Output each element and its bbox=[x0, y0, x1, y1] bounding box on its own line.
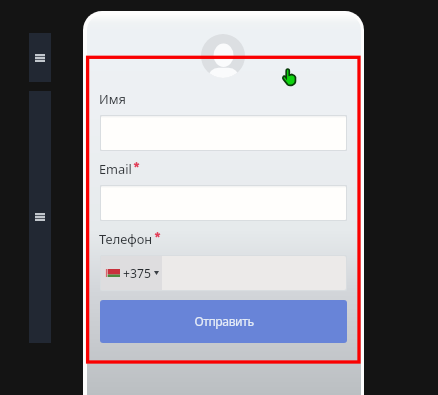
button[interactable]: Side panel menu bbox=[29, 91, 51, 343]
staticText: Имя bbox=[99, 90, 126, 107]
button[interactable]: Отправить bbox=[100, 300, 347, 343]
staticText: Email bbox=[99, 160, 132, 177]
button[interactable]: Open menu bbox=[29, 33, 51, 82]
button[interactable]: Phone number bbox=[101, 256, 346, 290]
staticText: Телефон bbox=[99, 230, 153, 247]
staticText: +375 bbox=[123, 265, 151, 282]
button[interactable]: Select country code, currently +375 bbox=[101, 256, 162, 290]
staticText: Отправить bbox=[194, 313, 254, 330]
